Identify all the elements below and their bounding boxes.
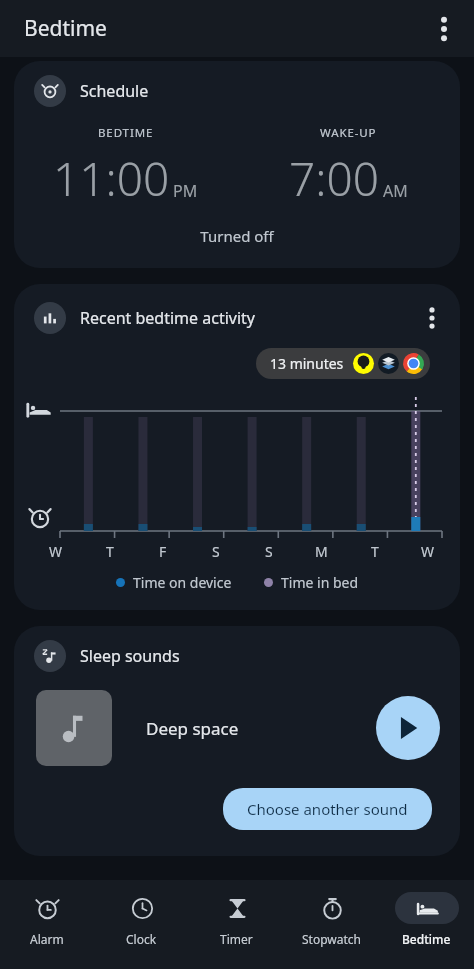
- staticText: Bedtime: [402, 931, 451, 947]
- staticText: Bedtime: [24, 14, 107, 43]
- staticText: T: [106, 542, 114, 561]
- staticText: WAKE-UP: [320, 125, 377, 141]
- staticText: BEDTIME: [98, 125, 154, 141]
- staticText: Choose another sound: [247, 799, 408, 819]
- button[interactable]: Stopwatch: [284, 880, 379, 947]
- staticText: T: [371, 542, 379, 561]
- button[interactable]: Schedule: [14, 61, 460, 268]
- button[interactable]: 13 minutes: [256, 348, 430, 379]
- staticText: Alarm: [30, 931, 64, 947]
- staticText: Schedule: [80, 80, 149, 102]
- staticText: 11:00: [53, 147, 170, 210]
- staticText: Sleep sounds: [80, 645, 180, 667]
- staticText: F: [159, 542, 167, 561]
- staticText: 7:00: [289, 147, 380, 210]
- button[interactable]: Choose another sound: [223, 788, 432, 830]
- staticText: Stopwatch: [302, 931, 361, 947]
- button[interactable]: Play: [376, 696, 440, 760]
- staticText: Deep space: [146, 717, 239, 740]
- button[interactable]: Timer: [189, 880, 284, 947]
- button[interactable]: Alarm: [0, 880, 94, 947]
- staticText: W: [421, 542, 435, 561]
- staticText: Clock: [126, 931, 157, 947]
- staticText: AM: [383, 180, 408, 202]
- staticText: W: [49, 542, 63, 561]
- staticText: S: [265, 542, 273, 561]
- staticText: 13 minutes: [270, 354, 344, 373]
- staticText: Timer: [220, 931, 253, 947]
- staticText: Turned off: [14, 226, 460, 246]
- button[interactable]: Activity options: [412, 298, 452, 338]
- staticText: Time on device: [133, 573, 232, 592]
- button[interactable]: Deep space: [36, 690, 440, 766]
- button[interactable]: Bedtime: [379, 880, 474, 947]
- button[interactable]: More options: [424, 9, 464, 49]
- staticText: Time in bed: [281, 573, 359, 592]
- staticText: M: [315, 542, 328, 561]
- button[interactable]: Clock: [94, 880, 189, 947]
- staticText: Recent bedtime activity: [80, 307, 256, 329]
- staticText: S: [212, 542, 220, 561]
- staticText: PM: [173, 180, 198, 202]
